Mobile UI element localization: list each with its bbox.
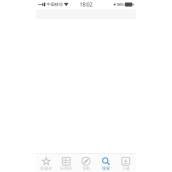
staticText: 搜索 (102, 166, 110, 171)
staticText: 18:02 (79, 1, 92, 8)
button[interactable]: 导航 (76, 154, 96, 172)
staticText: 中国移动 (47, 2, 63, 7)
staticText: 应用库 (60, 166, 72, 171)
staticText: 导航 (82, 166, 90, 171)
staticText: 98% (116, 2, 123, 7)
button[interactable]: 收藏夹 (36, 154, 56, 172)
staticText: 收藏夹 (40, 166, 52, 171)
button[interactable]: 下载 (116, 154, 136, 172)
button[interactable]: 搜索 (96, 154, 116, 172)
button[interactable]: 应用库 (56, 154, 76, 172)
staticText: 下载 (122, 166, 130, 171)
